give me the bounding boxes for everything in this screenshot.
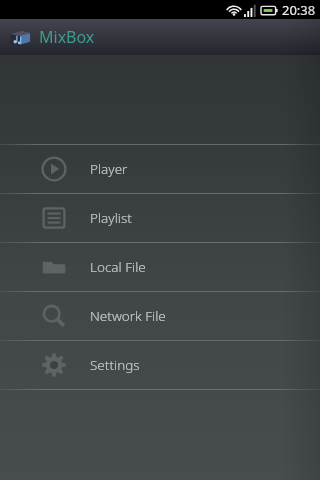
staticText: Playlist <box>90 209 132 227</box>
staticText: 20:38 <box>282 1 316 19</box>
staticText: Network File <box>90 307 166 325</box>
staticText: Local File <box>90 258 146 276</box>
staticText: MixBox <box>39 26 95 48</box>
button[interactable]: Player <box>0 145 320 193</box>
button[interactable]: Local File <box>0 243 320 291</box>
button[interactable]: Settings <box>0 341 320 389</box>
staticText: Player <box>90 160 128 178</box>
button[interactable]: Network File <box>0 292 320 340</box>
staticText: Settings <box>90 356 140 374</box>
button[interactable]: Playlist <box>0 194 320 242</box>
